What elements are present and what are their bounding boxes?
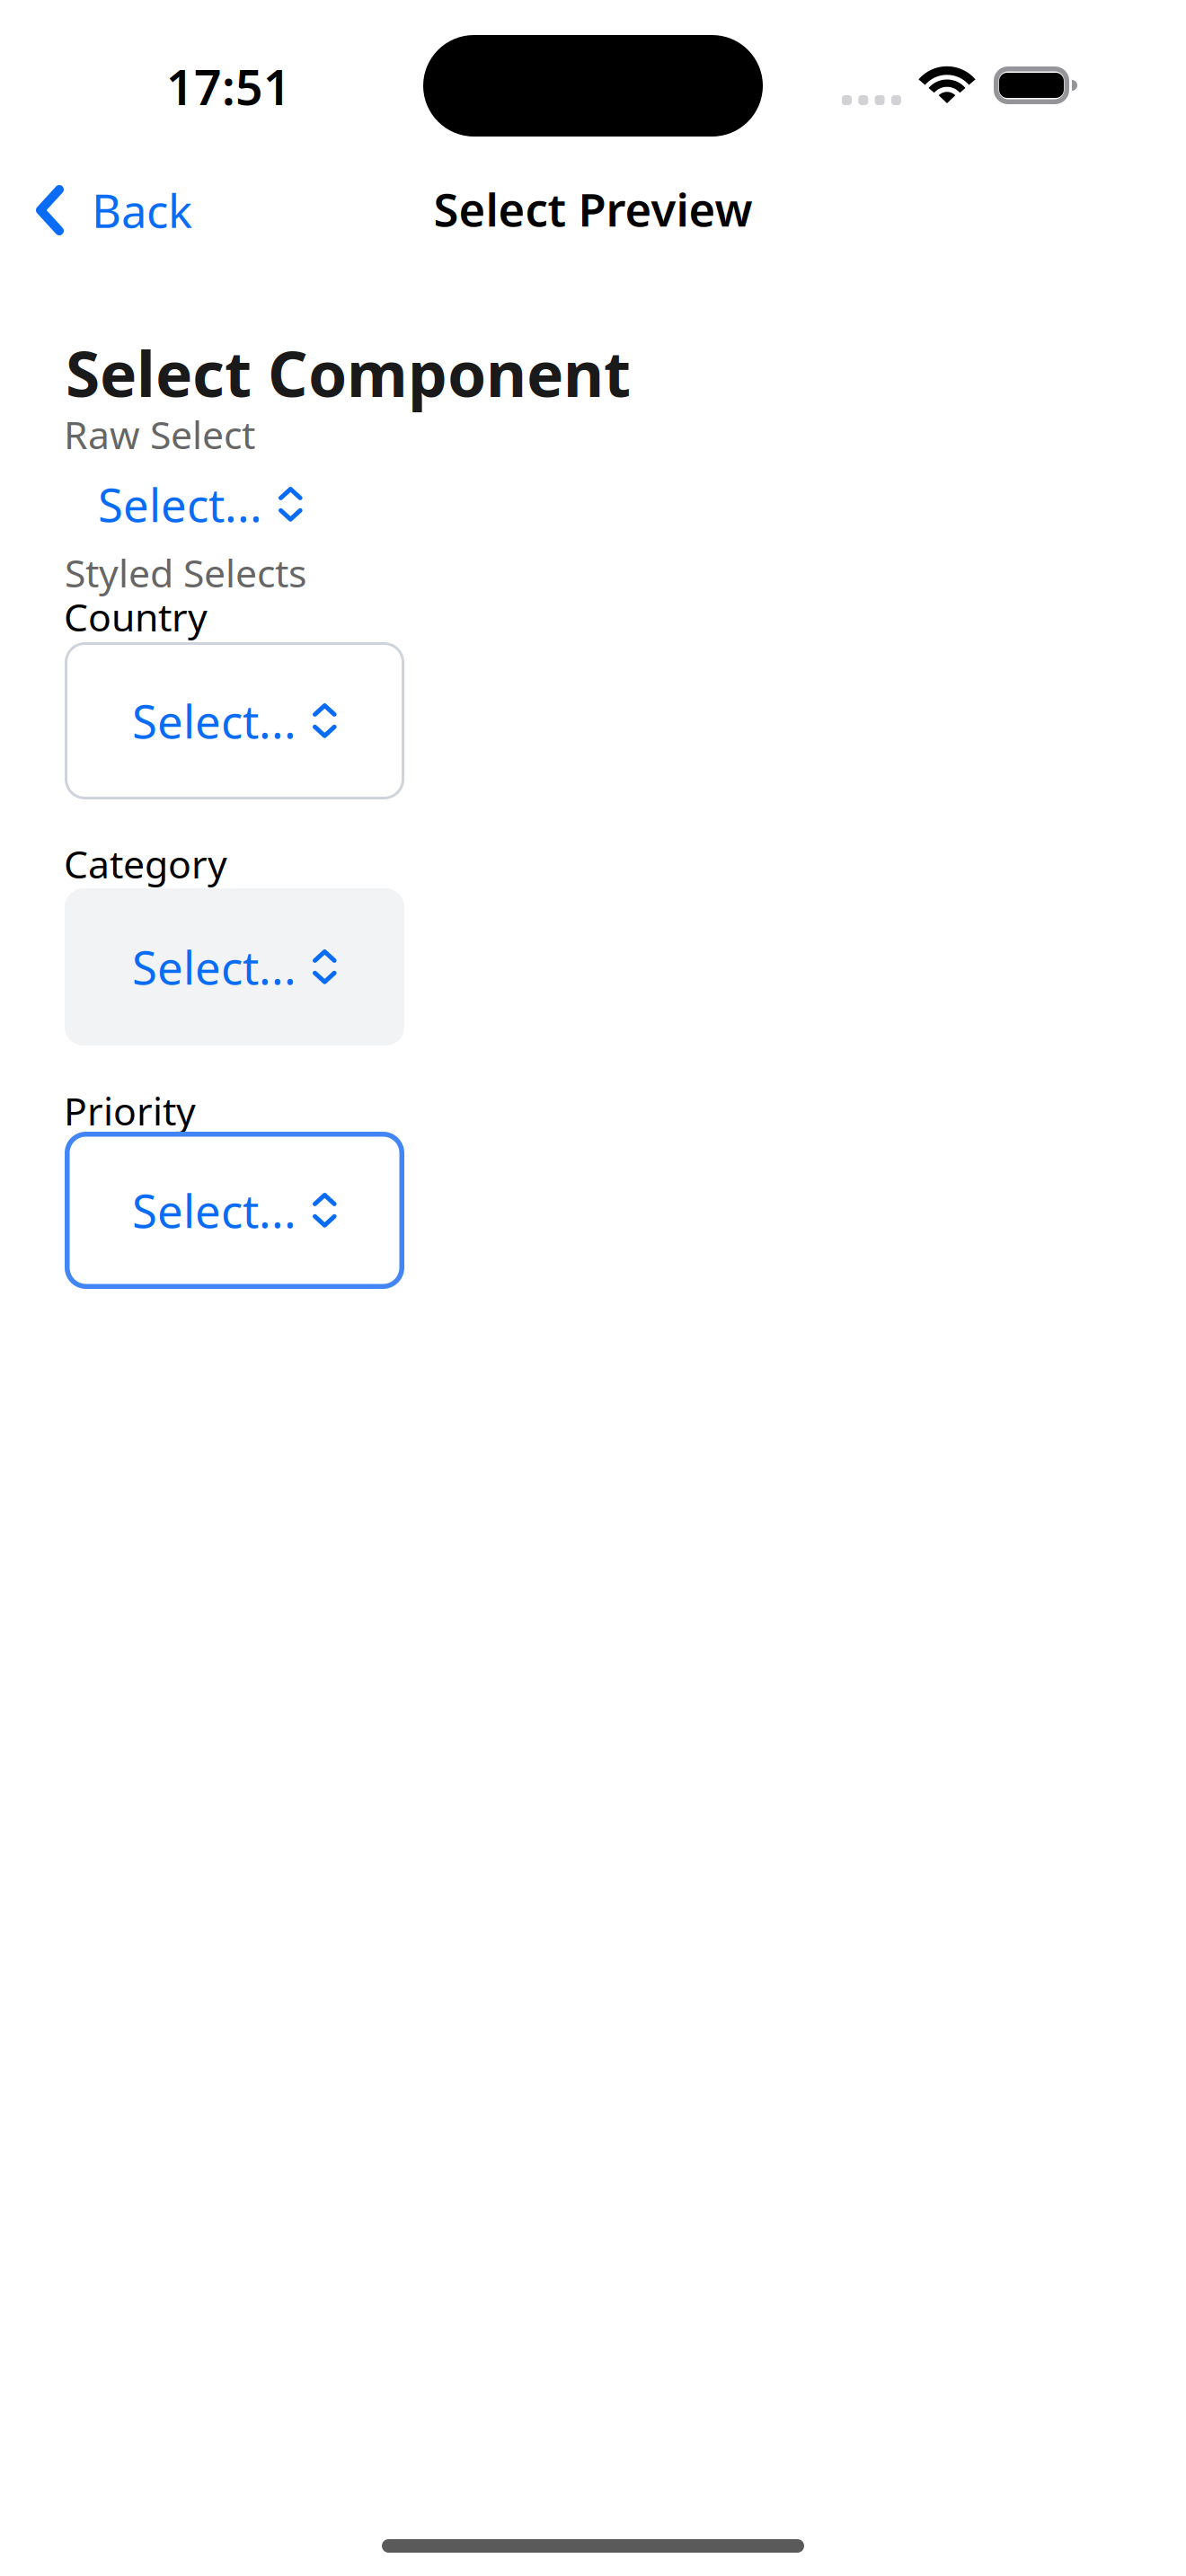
button[interactable]: Select... bbox=[65, 642, 404, 799]
staticText: Select... bbox=[132, 691, 296, 751]
button[interactable]: Select... bbox=[98, 483, 312, 525]
button[interactable]: Select... bbox=[65, 888, 404, 1045]
staticText: Select... bbox=[132, 937, 296, 997]
staticText: Back bbox=[92, 180, 192, 240]
staticText: Priority bbox=[64, 1085, 196, 1136]
staticText: Select Component bbox=[66, 331, 631, 414]
staticText: Select... bbox=[132, 1180, 296, 1241]
staticText: Select... bbox=[98, 474, 262, 535]
button[interactable]: Back bbox=[0, 174, 214, 246]
staticText: Select Preview bbox=[434, 179, 752, 239]
staticText: Country bbox=[64, 591, 208, 642]
staticText: Raw Select bbox=[64, 409, 255, 460]
button[interactable]: Select... bbox=[65, 1132, 404, 1289]
staticText: Category bbox=[64, 838, 227, 889]
staticText: 17:51 bbox=[166, 55, 291, 118]
staticText: Styled Selects bbox=[65, 547, 306, 598]
